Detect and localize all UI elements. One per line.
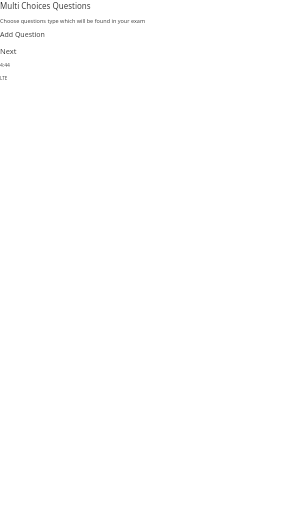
staticText: Add Question — [0, 30, 45, 40]
staticText: 4:44 — [0, 62, 10, 69]
staticText: Choose questions type which will be foun… — [0, 17, 146, 24]
staticText: LTE — [0, 75, 8, 81]
staticText: Next — [0, 46, 17, 56]
staticText: Multi Choices Questions — [0, 0, 91, 11]
